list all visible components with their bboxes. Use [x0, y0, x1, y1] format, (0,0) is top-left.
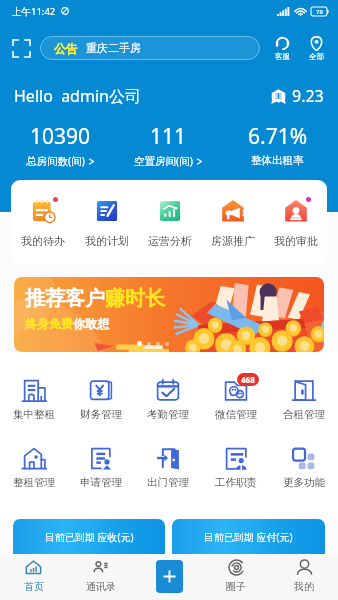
button[interactable]: 申请管理 [67, 445, 134, 489]
button[interactable]: 更多功能 [270, 445, 338, 489]
staticText: 6.71% [248, 122, 308, 151]
button[interactable]: 推荐客户 [14, 277, 324, 352]
staticText: 首页 [24, 580, 44, 593]
button[interactable]: 客服 [268, 36, 296, 61]
staticText: 圈子 [226, 580, 246, 593]
staticText: 公告 [54, 41, 78, 56]
staticText: 我的审批 [274, 234, 318, 248]
staticText: 终身 [25, 316, 49, 331]
staticText: 111 [150, 122, 187, 151]
staticText: 目前已到期 应收(元) [45, 530, 134, 544]
staticText: 78 [316, 8, 323, 16]
button[interactable]: 我的待办 [11, 199, 75, 248]
staticText: 整租管理 [13, 476, 55, 489]
staticText: 我的待办 [21, 234, 65, 248]
staticText: 客服 [275, 52, 290, 61]
staticText: 赚时长 [105, 286, 165, 311]
staticText: 468 [241, 374, 255, 385]
staticText: 微信管理 [215, 408, 257, 421]
staticText: 申请管理 [80, 476, 122, 489]
staticText: 目前已到期 应付(元) [204, 530, 293, 544]
staticText: 空置房间(间) [134, 154, 193, 168]
staticText: 重庆二手房 [86, 41, 141, 55]
button[interactable]: 考勤管理 [134, 377, 202, 421]
staticText: 出门管理 [147, 476, 189, 489]
staticText: 整体出租率 [251, 154, 304, 167]
button[interactable]: 财务管理 [67, 377, 134, 421]
staticText: 我的 [294, 580, 314, 593]
staticText: 更多功能 [283, 476, 325, 489]
button[interactable]: 集中整租 [0, 377, 67, 421]
button[interactable]: 公告 [40, 36, 260, 60]
button[interactable]: 10390 [6, 122, 114, 168]
button[interactable]: 6.71% [223, 122, 332, 167]
button[interactable]: Add [156, 560, 183, 593]
staticText: 考勤管理 [147, 408, 189, 421]
button[interactable]: 房源推广 [201, 199, 264, 248]
staticText: 通讯录 [86, 580, 116, 593]
staticText: 集中整租 [13, 408, 55, 421]
button[interactable]: 全部 [302, 36, 330, 61]
staticText: 全部 [309, 52, 324, 61]
button[interactable]: 整租管理 [0, 445, 67, 489]
staticText: Hello admin公司 [14, 85, 141, 107]
staticText: 10390 [30, 122, 91, 151]
staticText: 你敢想 [73, 316, 109, 331]
button[interactable]: 目前已到期 应收(元) [13, 519, 165, 554]
staticText: 财务管理 [80, 408, 122, 421]
button[interactable]: 合租管理 [270, 377, 338, 421]
staticText: 上午11:42 [12, 5, 56, 18]
staticText: 我的计划 [85, 234, 129, 248]
button[interactable]: 首页 [0, 559, 67, 593]
staticText: 总房间数(间) [26, 154, 85, 168]
button[interactable]: 我的审批 [264, 199, 327, 248]
staticText: 推荐客户 [25, 286, 105, 311]
staticText: 运营分析 [148, 234, 192, 248]
button[interactable]: 运营分析 [138, 199, 201, 248]
button[interactable]: 111 [114, 122, 223, 168]
staticText: 合租管理 [283, 408, 325, 421]
button[interactable]: 通讯录 [67, 559, 134, 593]
button[interactable]: 出门管理 [134, 445, 202, 489]
staticText: 9.23 [292, 85, 324, 107]
button[interactable]: 468 [202, 377, 270, 421]
button[interactable]: 圈子 [202, 559, 270, 593]
staticText: 免费 [49, 316, 73, 331]
button[interactable]: 工作职责 [202, 445, 270, 489]
button[interactable]: 目前已到期 应付(元) [172, 519, 325, 554]
button[interactable]: 我的 [270, 559, 338, 593]
button[interactable]: 我的计划 [75, 199, 138, 248]
button[interactable]: Scan [8, 35, 34, 61]
staticText: 工作职责 [215, 476, 257, 489]
staticText: 房源推广 [211, 234, 255, 248]
